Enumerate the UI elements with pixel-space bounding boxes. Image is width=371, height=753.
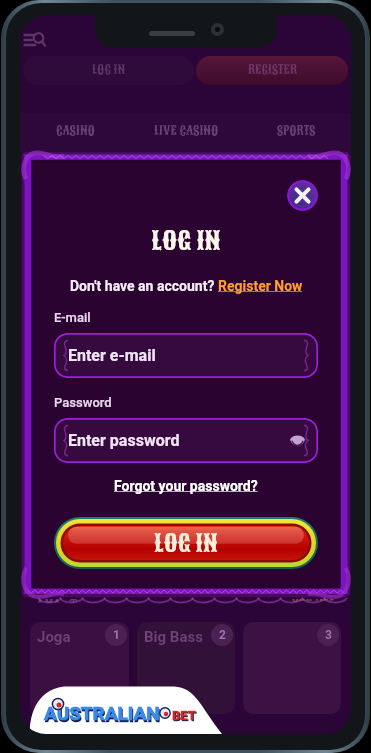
button[interactable]: LOG IN: [23, 56, 194, 85]
staticText: LIVE CASINO: [154, 123, 219, 140]
staticText: BET: [172, 708, 196, 723]
button[interactable]: Forgot your password?: [114, 478, 258, 494]
button[interactable]: LOG IN: [54, 517, 318, 569]
staticText: LOG IN: [154, 527, 218, 559]
staticText: E-mail: [54, 310, 91, 325]
button[interactable]: Register Now: [218, 278, 303, 294]
staticText: LOG IN: [92, 62, 126, 79]
button[interactable]: Big Bass: [137, 622, 235, 714]
staticText: 1: [113, 628, 120, 642]
button[interactable]: Menu and search: [24, 30, 46, 52]
staticText: BET: [173, 709, 197, 724]
button[interactable]: CASINO: [20, 119, 131, 143]
staticText: AUSTRALIAN: [45, 704, 161, 726]
staticText: SPORTS: [277, 123, 316, 140]
staticText: CASINO: [56, 123, 95, 140]
button[interactable]: 3: [243, 622, 341, 714]
button[interactable]: SEE ALL: [292, 588, 335, 606]
staticText: Enter password: [68, 431, 180, 450]
button[interactable]: AUSTRALIAN: [20, 686, 222, 734]
staticText: TOP: [36, 585, 63, 609]
staticText: Big Bass: [144, 628, 203, 646]
staticText: Don't have an account?: [70, 278, 218, 294]
staticText: Joga: [37, 628, 71, 646]
staticText: Enter e-mail: [68, 346, 156, 365]
staticText: REGISTER: [248, 62, 297, 79]
staticText: AUSTRALIAN: [44, 702, 160, 724]
button[interactable]: LIVE CASINO: [131, 119, 241, 143]
button[interactable]: Joga: [30, 622, 129, 714]
staticText: Password: [54, 395, 112, 410]
staticText: 3: [325, 628, 332, 642]
button[interactable]: Close: [287, 180, 318, 211]
staticText: Register Now: [218, 278, 303, 294]
button[interactable]: REGISTER: [196, 56, 348, 85]
staticText: 2: [219, 628, 226, 642]
button[interactable]: SPORTS: [241, 119, 351, 143]
button[interactable]: Enter password: [54, 418, 318, 463]
staticText: SEE ALL: [292, 588, 335, 606]
button[interactable]: Show password: [290, 433, 305, 448]
staticText: LOG IN: [151, 223, 221, 258]
button[interactable]: Enter e-mail: [54, 333, 318, 378]
staticText: Forgot your password?: [114, 478, 258, 494]
